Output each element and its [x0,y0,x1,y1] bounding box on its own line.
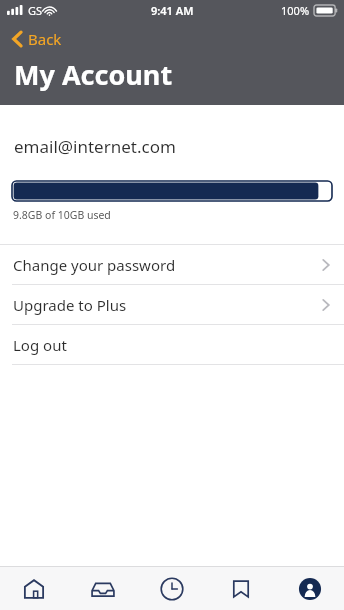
staticText: 9:41 AM [151,3,194,18]
button[interactable]: Back [8,26,66,52]
staticText: email@internet.com [14,135,176,158]
staticText: 9.8GB of 10GB used [13,208,111,222]
staticText: 100% [281,3,310,18]
staticText: Upgrade to Plus [13,295,127,315]
button[interactable]: Change your password [0,245,344,284]
button[interactable]: Recent [137,567,206,610]
button[interactable]: Home [0,567,68,610]
button[interactable]: Log out [0,325,344,364]
staticText: Log out [13,335,67,355]
staticText: Change your password [13,255,176,275]
staticText: Back [28,29,62,49]
staticText: My Account [14,56,173,93]
button[interactable]: Account [275,567,344,610]
button[interactable]: Inbox [68,567,137,610]
button[interactable]: Upgrade to Plus [0,285,344,324]
staticText: GS [28,3,43,18]
button[interactable]: Saved [206,567,275,610]
